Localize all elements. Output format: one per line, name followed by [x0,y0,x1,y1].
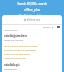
staticText: Reklam [43,26,51,29]
button[interactable]: Search [2,15,62,24]
button[interactable]: Reklam [2,25,62,29]
staticText: Bir dilin bütün veya belli bir çağda [4,45,38,48]
staticText: sözlükçü [4,62,20,67]
staticText: alfabe sırasına göre alarak [4,53,30,56]
staticText: tanımlarını yapan eser [4,57,26,60]
staticText: sözlüğünden [4,33,27,38]
staticText: sözlükçü isim [4,68,18,71]
staticText: Kelime ara [27,18,40,22]
staticText: sözlük isim (sö'zlük) [4,39,24,42]
other: Search [24,19,26,21]
staticText: offline, plus [24,8,40,12]
staticText: Search 80,000+ words [17,2,47,6]
staticText: English translations [19,14,46,18]
staticText: kullanılmış kelime ve deyimlerini [4,49,36,52]
staticText: Türkçe Sözlük [4,29,18,32]
